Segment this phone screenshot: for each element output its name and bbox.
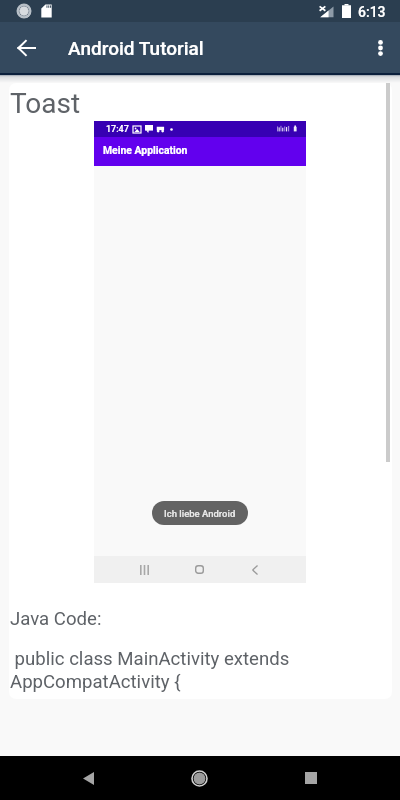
staticText: Java Code: xyxy=(10,608,102,630)
button[interactable]: Home xyxy=(185,556,213,583)
staticText: Toast xyxy=(10,87,81,120)
button[interactable]: Back xyxy=(241,556,269,583)
staticText: public class MainActivity extends AppCom… xyxy=(10,648,305,693)
staticText: Ich liebe Android xyxy=(164,508,236,519)
button[interactable]: Recent apps xyxy=(288,756,333,800)
staticText: 6:13 xyxy=(358,4,386,20)
staticText: 17:47 xyxy=(106,124,129,135)
staticText: Android Tutorial xyxy=(68,37,204,59)
button[interactable]: Recent apps xyxy=(130,556,158,583)
button[interactable]: More options xyxy=(360,24,400,72)
button[interactable]: Navigate up xyxy=(2,24,50,72)
button[interactable]: Back xyxy=(66,756,111,800)
button[interactable]: Home xyxy=(177,756,222,800)
staticText: Meine Application xyxy=(103,144,188,156)
